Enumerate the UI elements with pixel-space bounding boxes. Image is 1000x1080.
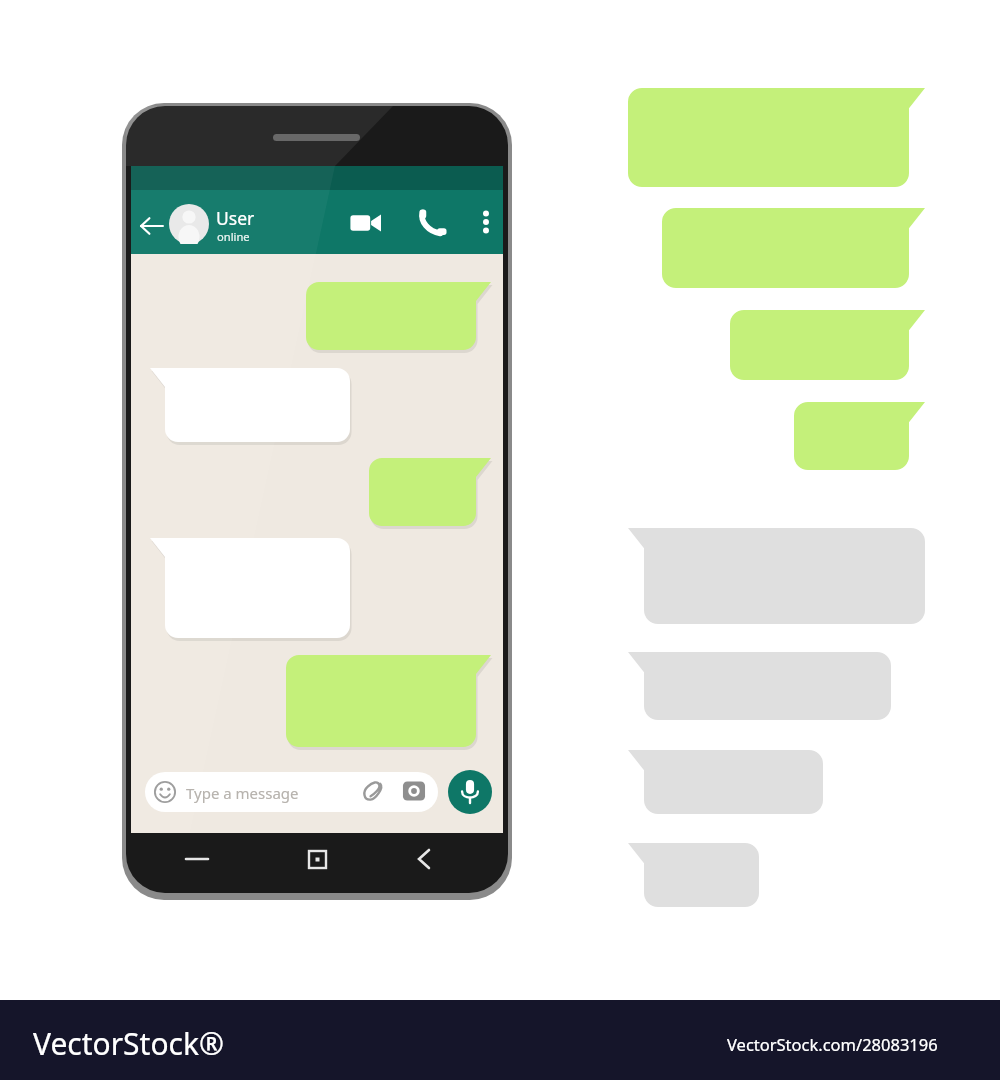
button[interactable]: Back	[136, 206, 172, 246]
button[interactable]: Back navigation	[410, 845, 442, 877]
button[interactable]: Video call	[344, 200, 390, 248]
button[interactable]: Home	[301, 845, 335, 877]
button[interactable]: Recent apps	[180, 845, 216, 877]
staticText: User	[216, 206, 255, 230]
button[interactable]: Voice call	[412, 200, 456, 248]
button[interactable]: Attach	[362, 780, 386, 804]
button[interactable]: User profile, online	[168, 200, 298, 252]
staticText: VectorStock®	[33, 1023, 224, 1064]
staticText: Type a message	[186, 783, 299, 803]
staticText: online	[217, 229, 250, 244]
button[interactable]: Camera	[403, 780, 427, 804]
button[interactable]: More options	[468, 200, 504, 248]
staticText: VectorStock.com/28083196	[727, 1033, 938, 1055]
button[interactable]: Record voice message	[448, 770, 492, 814]
button[interactable]: Type a message	[145, 772, 438, 812]
